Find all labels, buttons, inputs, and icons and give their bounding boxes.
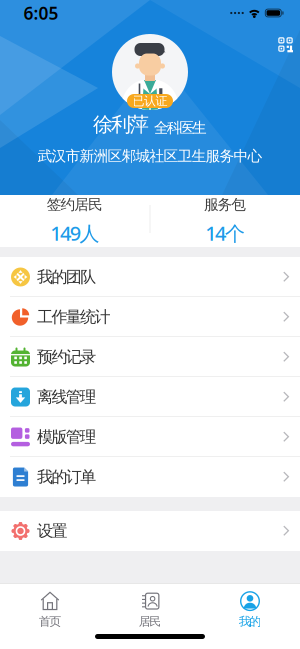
- button[interactable]: 预约记录: [0, 337, 300, 377]
- button[interactable]: 签约居民: [0, 195, 150, 247]
- staticText: 14个: [205, 220, 245, 246]
- staticText: 我的: [239, 614, 261, 629]
- button[interactable]: 我的订单: [0, 457, 300, 497]
- staticText: 我的团队: [37, 267, 96, 287]
- button[interactable]: Scan QR code: [278, 37, 293, 52]
- staticText: 工作量统计: [37, 307, 111, 327]
- staticText: 我的订单: [37, 467, 96, 487]
- staticText: 模版管理: [37, 427, 96, 447]
- staticText: 全科医生: [154, 119, 207, 137]
- staticText: 预约记录: [37, 347, 96, 367]
- button[interactable]: 离线管理: [0, 377, 300, 417]
- staticText: 设置: [37, 521, 67, 541]
- staticText: 首页: [39, 614, 61, 629]
- button[interactable]: 服务包: [150, 195, 300, 247]
- staticText: 徐利萍: [93, 112, 149, 137]
- staticText: 6:05: [23, 1, 58, 24]
- button[interactable]: 设置: [0, 511, 300, 551]
- button[interactable]: 我的团队: [0, 257, 300, 297]
- staticText: 居民: [139, 614, 161, 629]
- staticText: 签约居民: [47, 196, 103, 214]
- button[interactable]: 模版管理: [0, 417, 300, 457]
- button[interactable]: 首页: [0, 587, 100, 633]
- staticText: 已认证: [132, 94, 167, 108]
- staticText: 149人: [50, 220, 100, 246]
- staticText: 服务包: [204, 196, 246, 214]
- staticText: 离线管理: [37, 387, 96, 407]
- button[interactable]: 已认证: [127, 94, 173, 108]
- button[interactable]: 居民: [100, 587, 200, 633]
- button[interactable]: 我的: [200, 587, 300, 633]
- button[interactable]: 工作量统计: [0, 297, 300, 337]
- staticText: 武汉市新洲区邾城社区卫生服务中心: [37, 147, 262, 165]
